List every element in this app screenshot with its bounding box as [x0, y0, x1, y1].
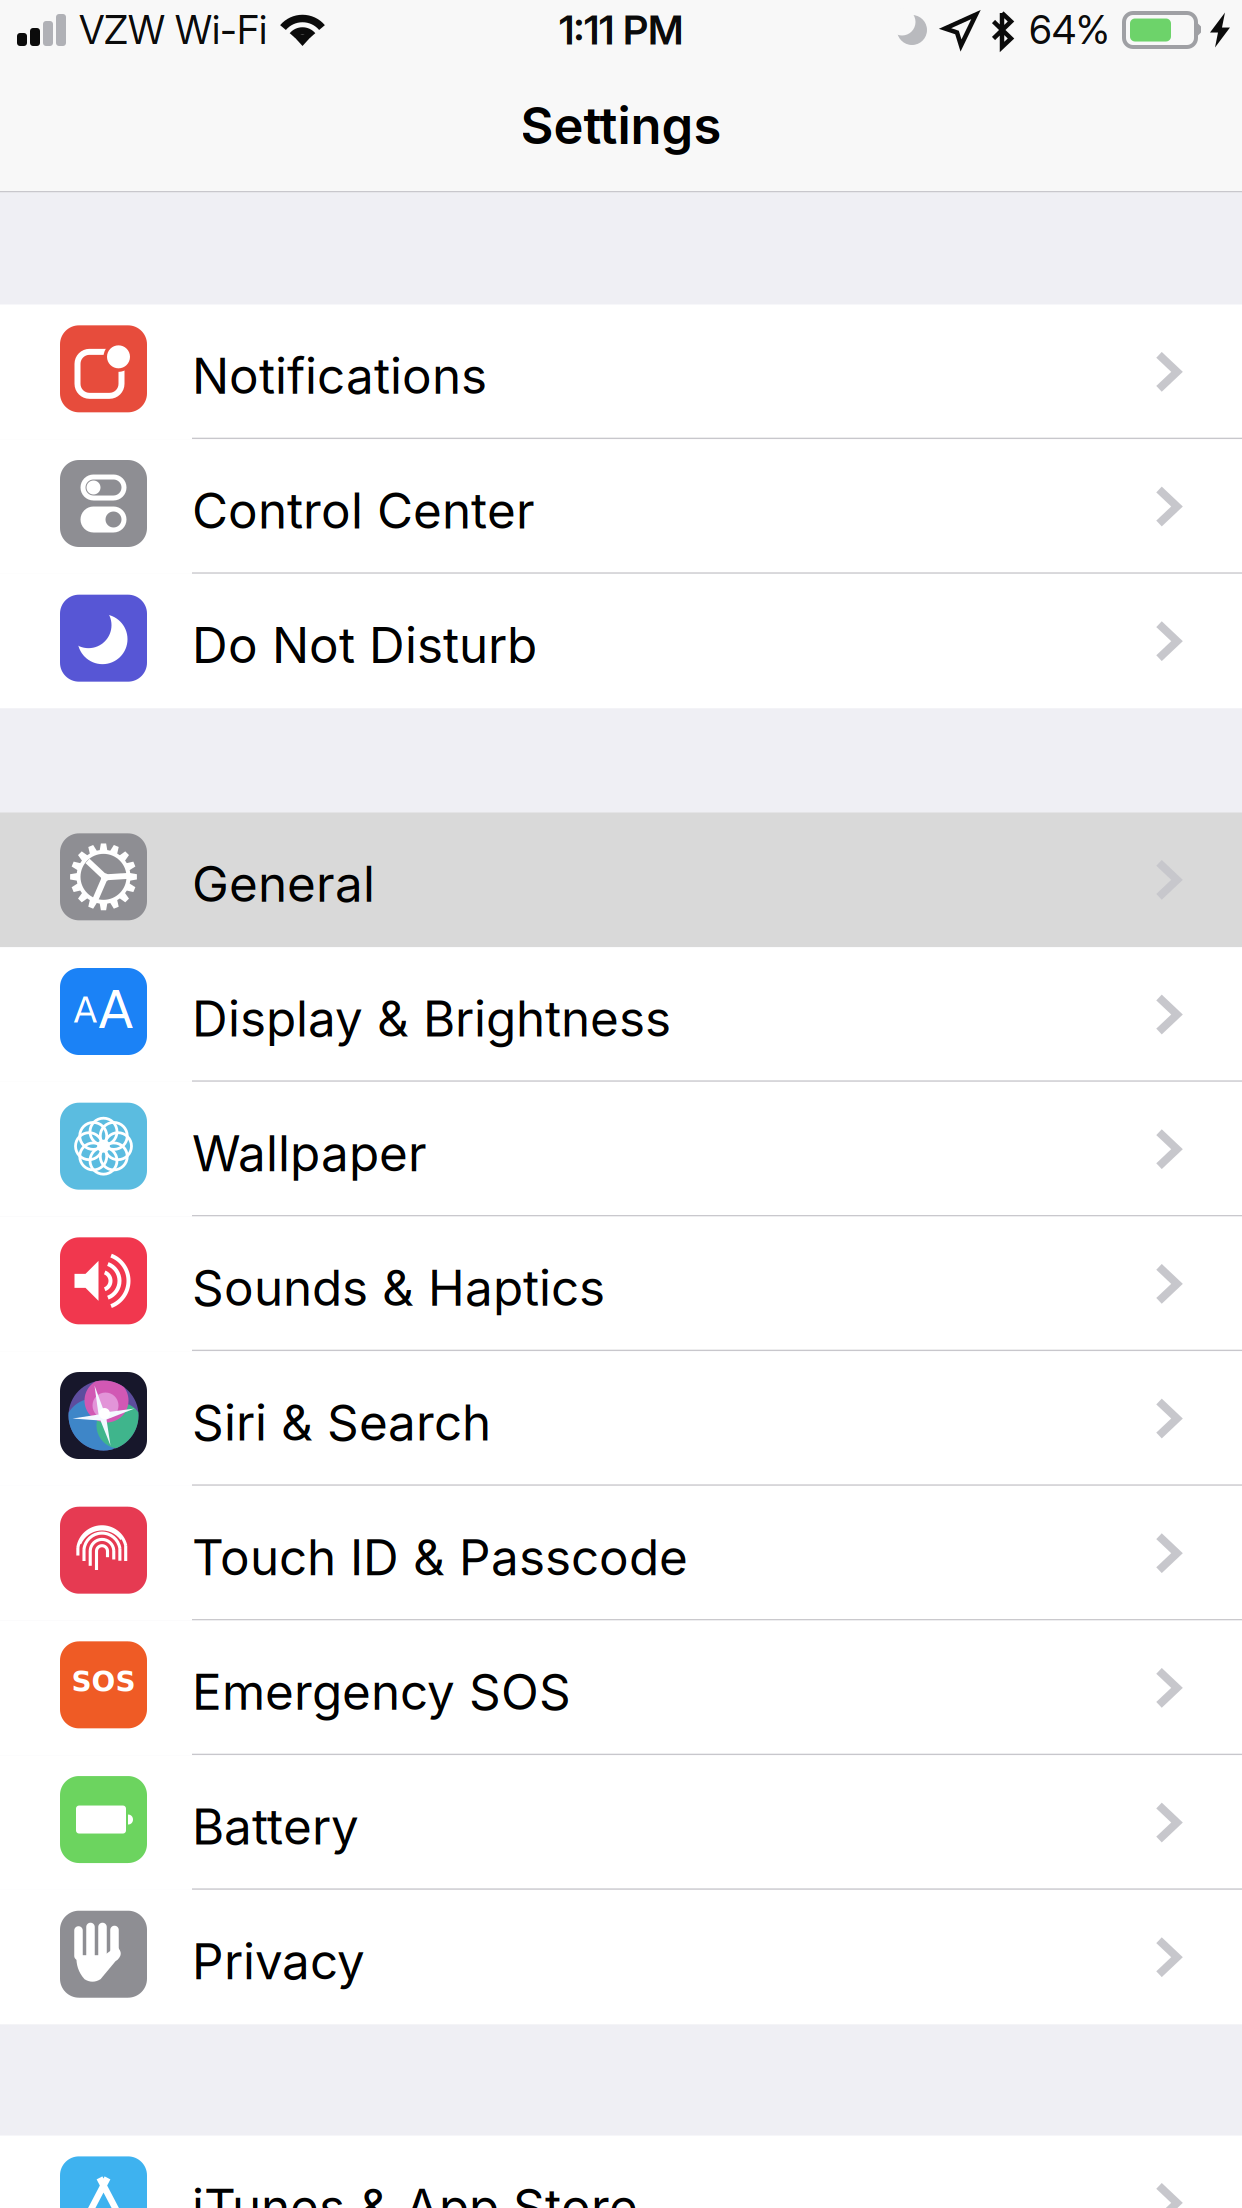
button[interactable]: Siri & Search: [0, 1351, 1242, 1486]
staticText: Control Center: [192, 481, 535, 540]
button[interactable]: SOS: [0, 1620, 1242, 1755]
button[interactable]: Touch ID & Passcode: [0, 1486, 1242, 1621]
staticText: Notifications: [192, 346, 487, 406]
staticText: Privacy: [192, 1931, 365, 1991]
button[interactable]: General: [0, 812, 1242, 947]
staticText: General: [192, 854, 375, 914]
staticText: Settings: [520, 95, 721, 156]
button[interactable]: iTunes & App Store: [0, 2135, 1242, 2208]
staticText: Display & Brightness: [192, 989, 671, 1048]
staticText: Sounds & Haptics: [192, 1258, 605, 1318]
staticText: Siri & Search: [192, 1393, 491, 1452]
button[interactable]: Control Center: [0, 439, 1242, 574]
staticText: SOS: [71, 1666, 135, 1698]
button[interactable]: Privacy: [0, 1890, 1242, 2025]
button[interactable]: Wallpaper: [0, 1082, 1242, 1216]
staticText: Battery: [192, 1797, 359, 1856]
staticText: Do Not Disturb: [192, 615, 537, 675]
staticText: iTunes & App Store: [192, 2177, 638, 2208]
staticText: A: [73, 990, 97, 1031]
staticText: Touch ID & Passcode: [192, 1527, 688, 1587]
button[interactable]: A: [0, 947, 1242, 1082]
staticText: 64%: [1029, 7, 1110, 53]
button[interactable]: Notifications: [0, 304, 1242, 439]
button[interactable]: Battery: [0, 1755, 1242, 1890]
staticText: Emergency SOS: [192, 1662, 571, 1722]
staticText: A: [98, 981, 133, 1040]
button[interactable]: Sounds & Haptics: [0, 1216, 1242, 1351]
staticText: Wallpaper: [192, 1123, 427, 1183]
button[interactable]: Do Not Disturb: [0, 574, 1242, 708]
staticText: VZW Wi-Fi: [79, 7, 267, 53]
staticText: 1:11 PM: [559, 6, 683, 54]
